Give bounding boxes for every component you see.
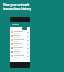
button[interactable]: Filter: [22, 27, 27, 30]
button[interactable]: [10, 54, 30, 58]
staticText: transactions history: [3, 7, 32, 11]
button[interactable]: [10, 34, 30, 38]
button[interactable]: [10, 46, 30, 50]
button[interactable]: [10, 38, 30, 42]
button[interactable]: [10, 50, 30, 54]
button[interactable]: [10, 30, 30, 34]
staticText: View your network: [3, 3, 30, 7]
button[interactable]: [10, 42, 30, 46]
